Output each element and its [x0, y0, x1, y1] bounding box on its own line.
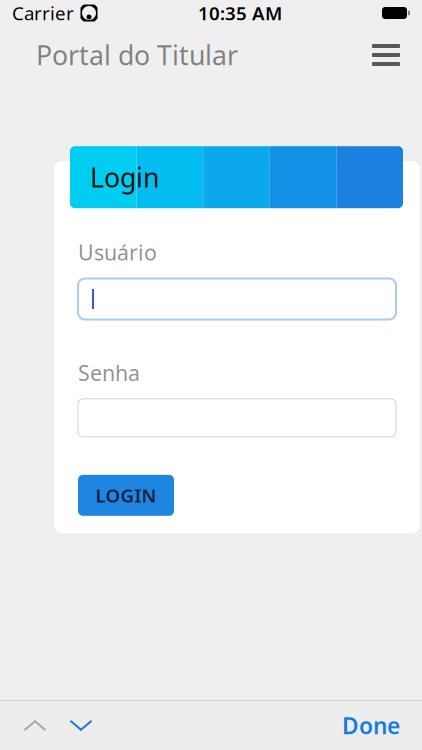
staticText: LOGIN — [95, 483, 156, 508]
button[interactable]: Menu — [364, 33, 408, 77]
button[interactable]: LOGIN — [78, 475, 174, 516]
staticText: Login — [90, 159, 159, 195]
button[interactable]: Done — [332, 703, 410, 747]
staticText: Senha — [78, 358, 140, 387]
staticText: 10:35 AM — [198, 1, 282, 25]
button[interactable]: Next field — [58, 703, 104, 747]
staticText: Portal do Titular — [36, 37, 238, 73]
button[interactable]: Previous field — [12, 703, 58, 747]
staticText: Carrier — [12, 1, 74, 25]
staticText: Done — [342, 710, 400, 740]
staticText: Usuário — [78, 238, 157, 266]
